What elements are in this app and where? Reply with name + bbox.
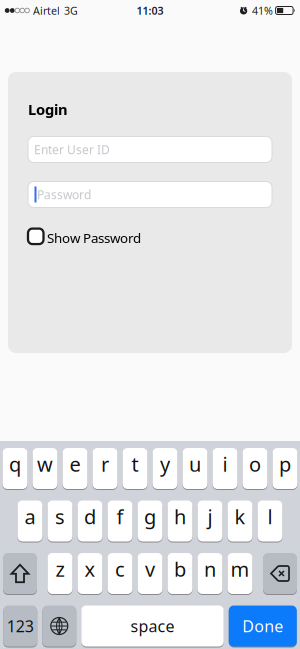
button[interactable]: space [81, 605, 224, 646]
button[interactable]: s [47, 500, 72, 541]
button[interactable]: Delete [263, 553, 297, 594]
staticText: m [230, 556, 249, 582]
button[interactable]: Enter User ID [28, 136, 272, 162]
button[interactable]: Shift [3, 553, 37, 594]
staticText: w [37, 451, 53, 477]
staticText: q [9, 451, 21, 477]
staticText: l [267, 503, 272, 530]
staticText: x [84, 556, 95, 582]
button[interactable]: t [122, 448, 147, 489]
button[interactable]: w [32, 448, 57, 489]
staticText: h [174, 503, 186, 530]
button[interactable]: k [227, 500, 252, 541]
button[interactable]: g [137, 500, 162, 541]
button[interactable]: f [107, 500, 132, 541]
button[interactable]: i [212, 448, 237, 489]
staticText: b [174, 556, 186, 582]
button[interactable]: l [257, 500, 282, 541]
staticText: Show Password [47, 229, 141, 247]
button[interactable]: j [197, 500, 222, 541]
button[interactable]: p [272, 448, 297, 489]
staticText: d [84, 503, 96, 530]
button[interactable]: z [47, 553, 72, 594]
staticText: space [130, 615, 174, 637]
staticText: Enter User ID [34, 141, 110, 157]
staticText: p [279, 451, 291, 477]
button[interactable]: o [242, 448, 267, 489]
staticText: z [55, 556, 64, 582]
staticText: c [115, 556, 125, 582]
staticText: u [189, 451, 201, 477]
button[interactable]: n [197, 553, 222, 594]
button[interactable]: v [137, 553, 162, 594]
staticText: Password [37, 186, 91, 202]
staticText: y [160, 451, 170, 477]
staticText: 41% [252, 3, 273, 18]
button[interactable]: d [77, 500, 102, 541]
staticText: k [234, 503, 245, 530]
staticText: 123 [7, 615, 34, 637]
staticText: j [207, 503, 212, 530]
button[interactable]: Password [28, 181, 272, 207]
staticText: Login [28, 99, 68, 119]
button[interactable]: Next keyboard [42, 605, 76, 646]
staticText: Airtel [33, 3, 60, 18]
staticText: o [249, 451, 261, 477]
staticText: s [55, 503, 65, 530]
staticText: i [222, 451, 227, 477]
button[interactable]: e [62, 448, 87, 489]
staticText: g [144, 503, 156, 530]
staticText: Done [242, 615, 283, 637]
staticText: r [101, 451, 109, 477]
button[interactable]: b [167, 553, 192, 594]
button[interactable]: r [92, 448, 117, 489]
button[interactable]: Done [229, 605, 297, 646]
button[interactable]: u [182, 448, 207, 489]
staticText: 3G [64, 3, 78, 18]
button[interactable]: q [2, 448, 27, 489]
staticText: a [24, 503, 35, 530]
staticText: 11:03 [136, 3, 163, 18]
staticText: t [131, 451, 138, 477]
staticText: n [204, 556, 216, 582]
button[interactable]: c [107, 553, 132, 594]
button[interactable]: x [77, 553, 102, 594]
button[interactable]: Show Password [28, 227, 141, 245]
button[interactable]: m [227, 553, 252, 594]
staticText: v [145, 556, 155, 582]
button[interactable]: a [17, 500, 42, 541]
staticText: f [116, 503, 123, 530]
button[interactable]: y [152, 448, 177, 489]
button[interactable]: 123 [3, 605, 37, 646]
button[interactable]: h [167, 500, 192, 541]
staticText: e [69, 451, 80, 477]
